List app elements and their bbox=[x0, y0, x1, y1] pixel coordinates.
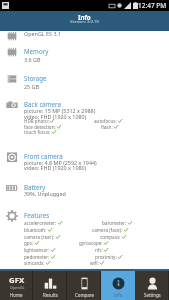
button[interactable]: Home bbox=[0, 271, 33, 300]
staticText: Settings bbox=[144, 292, 161, 298]
staticText: Results bbox=[43, 292, 58, 298]
other: Results bbox=[44, 277, 57, 290]
other: Settings bbox=[146, 277, 159, 290]
staticText: 25 GB bbox=[24, 83, 39, 90]
other: Info bbox=[112, 277, 125, 290]
staticText: 39%, Unplugged bbox=[24, 190, 66, 197]
staticText: 3.6 GB bbox=[24, 56, 41, 63]
button[interactable]: Compare bbox=[67, 271, 101, 300]
staticText: simcards: bbox=[24, 260, 45, 266]
staticText: Front camera bbox=[24, 152, 63, 160]
staticText: Storage bbox=[24, 74, 47, 82]
other: Home bbox=[9, 275, 25, 291]
staticText: flash: bbox=[101, 124, 113, 130]
staticText: video: FHD (1920 x 1080) bbox=[24, 113, 87, 120]
staticText: Info bbox=[114, 292, 123, 298]
button[interactable]: Settings bbox=[135, 271, 169, 300]
staticText: Home bbox=[10, 292, 23, 298]
staticText: HDR photo: bbox=[24, 118, 49, 124]
other: Compare bbox=[78, 277, 91, 290]
staticText: Battery bbox=[24, 183, 46, 191]
staticText: compass: bbox=[100, 234, 121, 240]
staticText: Compare bbox=[75, 292, 94, 298]
staticText: wifi: bbox=[90, 260, 99, 266]
staticText: Back camera bbox=[24, 100, 61, 108]
staticText: touch focus: bbox=[24, 129, 51, 135]
staticText: Version: 3.0.19 bbox=[70, 19, 99, 25]
staticText: lightsensor: bbox=[24, 247, 50, 253]
staticText: OpenGL bbox=[10, 285, 25, 290]
staticText: Features bbox=[24, 211, 50, 219]
staticText: Memory bbox=[24, 47, 49, 55]
staticText: accelerometer: bbox=[24, 220, 57, 226]
staticText: 12:47 PM bbox=[138, 1, 167, 10]
button[interactable]: Results bbox=[33, 271, 67, 300]
staticText: camera (face): bbox=[92, 227, 123, 233]
staticText: bluetooth: bbox=[24, 227, 47, 233]
staticText: picture: 15 MP (5312 x 2988) bbox=[24, 107, 96, 114]
staticText: barometer: bbox=[102, 220, 127, 226]
staticText: picture: 4.8 MP (2592 x 1944) bbox=[24, 159, 97, 166]
staticText: face detection: bbox=[24, 124, 56, 130]
staticText: GFX bbox=[9, 275, 25, 286]
staticText: camera (rear): bbox=[24, 234, 55, 240]
button[interactable]: Info bbox=[101, 271, 135, 300]
staticText: nfc: bbox=[95, 247, 103, 253]
staticText: OpenGL ES 3.1 bbox=[24, 30, 62, 37]
staticText: video: FHD (1920 x 1080) bbox=[24, 164, 87, 171]
staticText: autofocus: bbox=[94, 118, 117, 124]
staticText: proximity: bbox=[95, 254, 117, 260]
staticText: gyroscope: bbox=[79, 240, 103, 246]
staticText: pedometer: bbox=[24, 254, 50, 260]
staticText: gps: bbox=[24, 240, 34, 246]
staticText: Info bbox=[78, 13, 91, 21]
